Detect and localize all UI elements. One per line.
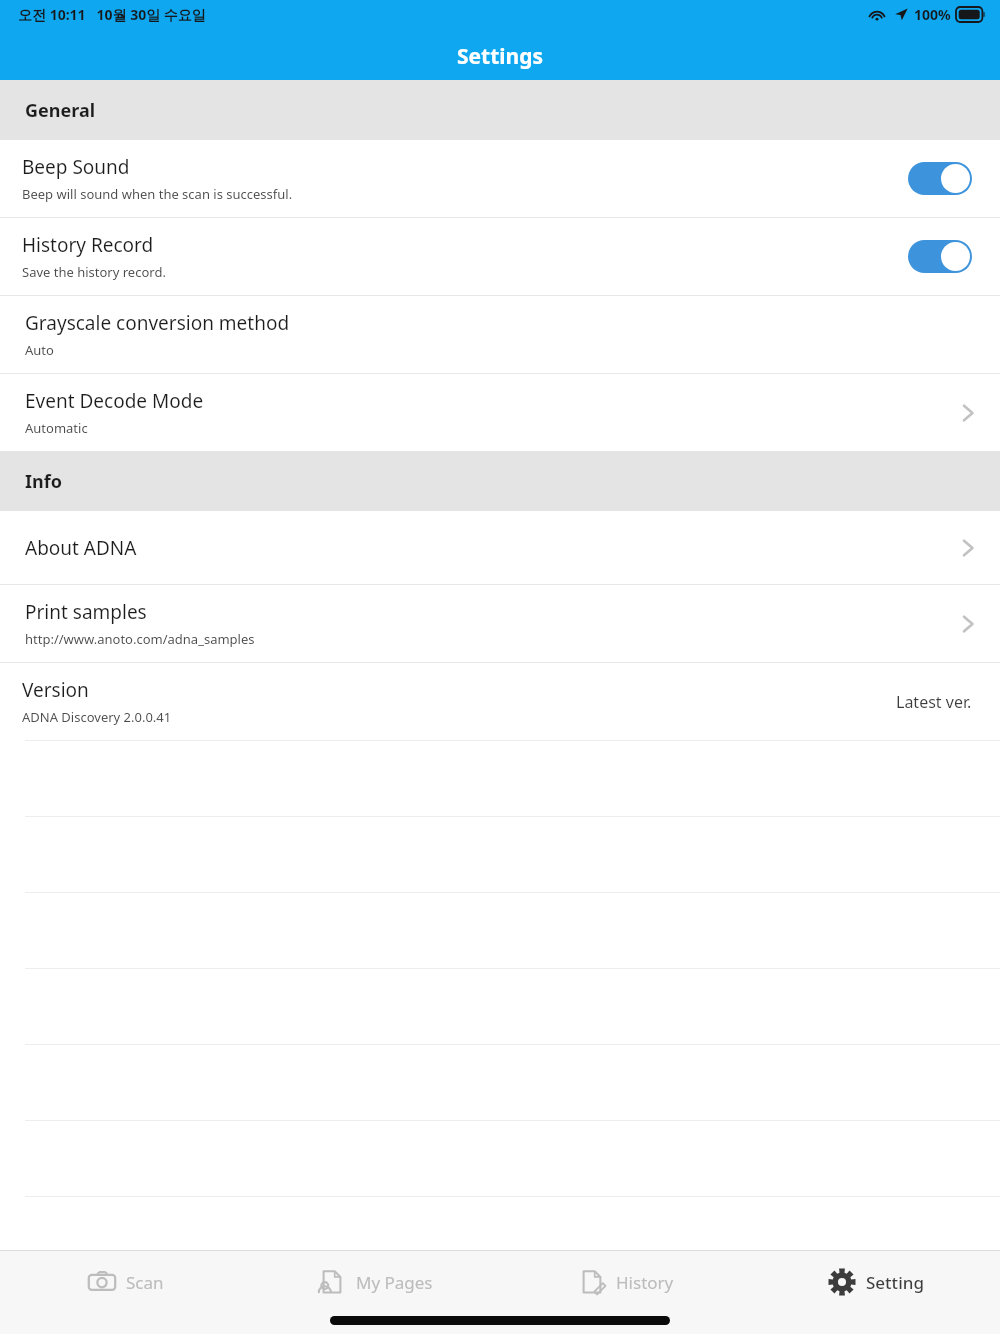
- staticText: History Record: [22, 232, 154, 258]
- staticText: History: [616, 1271, 674, 1294]
- staticText: Save the history record.: [22, 263, 166, 281]
- button[interactable]: Toggle: [908, 162, 972, 195]
- staticText: Automatic: [25, 419, 88, 437]
- staticText: Settings: [457, 42, 544, 71]
- staticText: 오전 10:11 10월 30일 수요일: [18, 5, 206, 24]
- staticText: ADNA Discovery 2.0.0.41: [22, 708, 172, 726]
- staticText: Scan: [126, 1271, 164, 1294]
- staticText: Auto: [25, 341, 54, 359]
- staticText: Latest ver.: [896, 691, 972, 713]
- button[interactable]: Print samples: [0, 585, 1000, 662]
- button[interactable]: About ADNA: [0, 511, 1000, 584]
- staticText: Print samples: [25, 599, 147, 625]
- staticText: About ADNA: [25, 535, 137, 561]
- staticText: Beep Sound: [22, 154, 130, 180]
- staticText: Beep will sound when the scan is success…: [22, 185, 293, 203]
- button[interactable]: Grayscale conversion method: [0, 296, 1000, 373]
- button[interactable]: History: [500, 1251, 750, 1313]
- button[interactable]: Setting: [750, 1251, 1000, 1313]
- button[interactable]: Version: [0, 663, 1000, 740]
- staticText: Event Decode Mode: [25, 388, 204, 414]
- staticText: 100%: [914, 5, 951, 24]
- button[interactable]: My Pages: [250, 1251, 500, 1313]
- button[interactable]: Scan: [0, 1251, 250, 1313]
- button[interactable]: Toggle: [908, 240, 972, 273]
- staticText: Info: [25, 469, 62, 494]
- staticText: General: [25, 98, 96, 123]
- staticText: http://www.anoto.com/adna_samples: [25, 630, 255, 648]
- staticText: Setting: [866, 1271, 924, 1294]
- staticText: Grayscale conversion method: [25, 310, 290, 336]
- button[interactable]: History Record: [0, 218, 1000, 295]
- button[interactable]: Beep Sound: [0, 140, 1000, 217]
- button[interactable]: Event Decode Mode: [0, 374, 1000, 451]
- staticText: My Pages: [356, 1271, 433, 1294]
- staticText: Version: [22, 677, 89, 703]
